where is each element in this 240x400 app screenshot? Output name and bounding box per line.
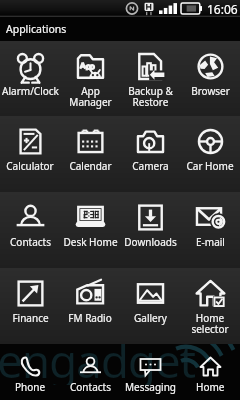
staticText: Contacts — [10, 235, 51, 249]
button[interactable]: Phone — [0, 344, 60, 400]
button[interactable]: Home selector — [180, 268, 240, 344]
button[interactable]: Calculator — [0, 116, 60, 192]
staticText: Home selector — [191, 311, 229, 336]
staticText: E-mail — [196, 235, 225, 249]
staticText: Gallery — [134, 311, 167, 325]
button[interactable]: Applications — [0, 17, 240, 41]
button[interactable]: Alarm/Clock — [0, 41, 60, 116]
staticText: Applications — [6, 22, 67, 36]
staticText: Messaging — [125, 380, 176, 394]
button[interactable]: Desk Home — [60, 192, 120, 268]
staticText: Finance — [12, 311, 49, 325]
staticText: Contacts — [70, 380, 111, 394]
button[interactable]: App Manager — [60, 41, 120, 116]
button[interactable]: Backup & Restore — [120, 41, 180, 116]
staticText: Calculator — [6, 159, 54, 173]
staticText: 16:06 — [207, 1, 238, 17]
button[interactable]: Messaging — [120, 344, 180, 400]
staticText: Downloads — [124, 235, 177, 249]
button[interactable]: Camera — [120, 116, 180, 192]
staticText: Car Home — [186, 159, 234, 173]
button[interactable]: Car Home — [180, 116, 240, 192]
staticText: engadget — [0, 344, 195, 385]
button[interactable]: Contacts — [60, 344, 120, 400]
staticText: Backup & Restore — [128, 84, 173, 109]
button[interactable]: Contacts — [0, 192, 60, 268]
button[interactable]: Home — [180, 344, 240, 400]
button[interactable]: Finance — [0, 268, 60, 344]
button[interactable]: FM Radio — [60, 268, 120, 344]
button[interactable]: Browser — [180, 41, 240, 116]
staticText: Alarm/Clock — [2, 84, 59, 98]
staticText: Desk Home — [63, 235, 118, 249]
staticText: FM Radio — [68, 311, 112, 325]
staticText: App Manager — [69, 84, 112, 109]
button[interactable]: Downloads — [120, 192, 180, 268]
staticText: Browser — [191, 84, 230, 98]
staticText: Home — [196, 380, 225, 394]
staticText: Camera — [132, 159, 169, 173]
button[interactable]: E-mail — [180, 192, 240, 268]
button[interactable]: Calendar — [60, 116, 120, 192]
staticText: Calendar — [69, 159, 112, 173]
staticText: Phone — [15, 380, 46, 394]
button[interactable]: Gallery — [120, 268, 180, 344]
